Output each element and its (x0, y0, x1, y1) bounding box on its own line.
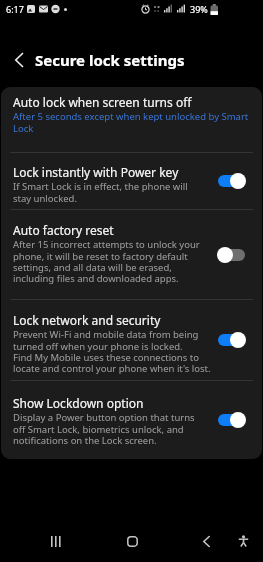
staticText: After 5 seconds except when kept unlocke… (13, 110, 249, 134)
staticText: Lock network and security (13, 312, 161, 328)
button[interactable]: Show Lockdown option (1, 381, 262, 459)
button[interactable]: Auto lock when screen turns off (1, 87, 262, 152)
button[interactable]: Auto factory reset (1, 210, 262, 299)
staticText: Prevent Wi-Fi and mobile data from being… (13, 328, 211, 374)
button[interactable]: Lock network and security (1, 300, 262, 380)
staticText: Auto lock when screen turns off (13, 94, 192, 110)
button[interactable] (8, 49, 30, 71)
staticText: Lock instantly with Power key (13, 164, 179, 180)
staticText: 39% (190, 3, 208, 15)
staticText: Display a Power button option that turns… (13, 411, 195, 446)
staticText: Secure lock settings (35, 50, 185, 70)
staticText: After 15 incorrect attempts to unlock yo… (13, 238, 200, 284)
button[interactable] (232, 530, 254, 552)
button[interactable]: Lock instantly with Power key (1, 153, 262, 209)
staticText: Show Lockdown option (13, 395, 144, 411)
staticText: Auto factory reset (13, 222, 114, 238)
button[interactable] (120, 529, 144, 553)
staticText: 6:17 (6, 3, 24, 15)
button[interactable] (44, 529, 68, 553)
staticText: If Smart Lock is in effect, the phone wi… (13, 180, 188, 204)
button[interactable] (195, 530, 217, 552)
